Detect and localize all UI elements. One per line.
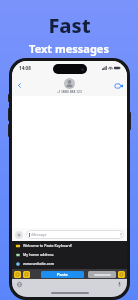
staticText: iMessage xyxy=(31,232,47,237)
staticText: 14:08 xyxy=(19,65,31,71)
staticText: Fast xyxy=(48,12,91,39)
button[interactable]: Add xyxy=(15,231,23,239)
button[interactable]: Video call xyxy=(113,80,124,91)
button[interactable]: Keyboard key xyxy=(118,271,125,278)
button[interactable]: www.website.com xyxy=(12,259,127,268)
button[interactable]: Contact xyxy=(64,78,75,89)
button[interactable]: My home address xyxy=(12,250,127,259)
button[interactable]: Delete xyxy=(88,271,116,278)
button[interactable]: Keyboard key xyxy=(14,271,21,278)
button[interactable]: Keyboard key xyxy=(23,271,30,278)
staticText: Welcome to Paste Keyboard! xyxy=(23,243,72,248)
staticText: My home address xyxy=(23,252,54,257)
staticText: Text messages xyxy=(29,41,109,56)
button[interactable]: Paste xyxy=(41,271,84,278)
button[interactable]: Back xyxy=(14,80,25,91)
staticText: www.website.com xyxy=(23,261,55,266)
staticText: Paste xyxy=(57,272,69,277)
button[interactable]: Welcome to Paste Keyboard! xyxy=(12,241,127,250)
button[interactable]: iMessage xyxy=(26,230,124,239)
button[interactable]: Dictate xyxy=(116,281,123,288)
button[interactable]: Switch keyboard xyxy=(16,281,23,288)
staticText: +1 (888) 888-123 xyxy=(57,90,82,94)
